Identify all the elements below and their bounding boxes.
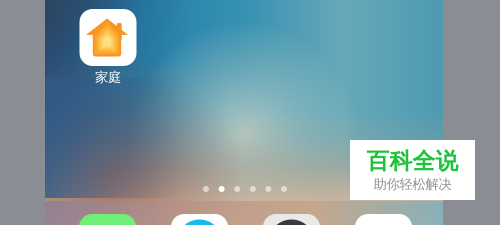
button[interactable]: Phone — [79, 214, 136, 225]
button[interactable]: Photos — [355, 214, 412, 225]
button[interactable]: Clock — [263, 214, 320, 225]
staticText: 百科全说 — [366, 147, 458, 175]
button[interactable]: Safari — [171, 214, 228, 225]
staticText: 助你轻松解决 — [373, 176, 451, 193]
staticText: 家庭 — [95, 69, 121, 85]
button[interactable]: 家庭 — [71, 9, 145, 85]
